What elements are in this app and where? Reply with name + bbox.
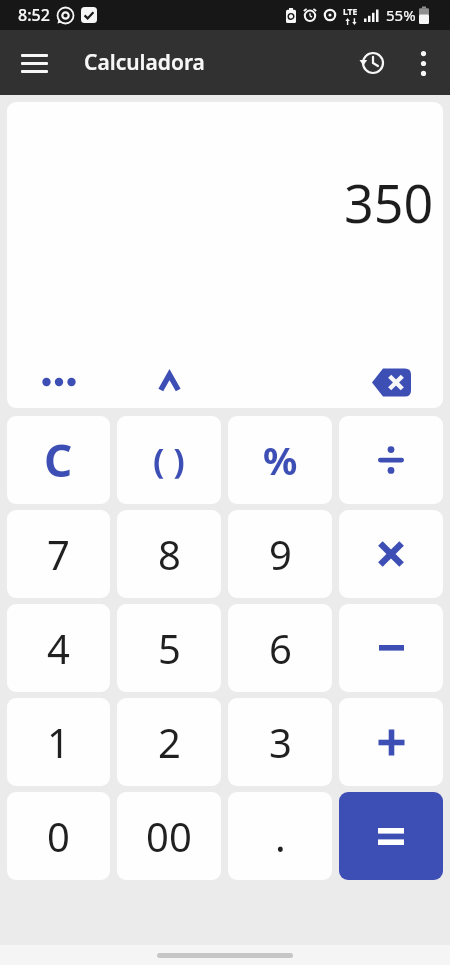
staticText: 1 xyxy=(47,715,70,769)
button[interactable]: 9 xyxy=(228,510,332,598)
staticText: 8 xyxy=(158,527,181,581)
button[interactable]: 3 xyxy=(228,698,332,786)
button[interactable]: 1 xyxy=(7,698,110,786)
button[interactable] xyxy=(339,792,443,880)
button[interactable] xyxy=(117,356,221,408)
staticText: 4 xyxy=(47,621,70,675)
button[interactable]: 8 xyxy=(117,510,221,598)
staticText: 00 xyxy=(146,809,192,863)
button[interactable]: ( ) xyxy=(117,416,221,504)
button[interactable]: 00 xyxy=(117,792,221,880)
staticText: LTE xyxy=(343,6,358,18)
staticText: 350 xyxy=(344,167,434,238)
button[interactable] xyxy=(406,46,440,80)
staticText: 3 xyxy=(269,715,292,769)
button[interactable] xyxy=(339,356,443,408)
staticText: 5 xyxy=(158,621,181,675)
button[interactable]: 7 xyxy=(7,510,110,598)
button[interactable]: 5 xyxy=(117,604,221,692)
button[interactable] xyxy=(13,42,55,84)
button[interactable] xyxy=(339,698,443,786)
button[interactable]: 6 xyxy=(228,604,332,692)
staticText: Calculadora xyxy=(84,48,205,77)
staticText: 8:52 xyxy=(18,4,50,26)
button[interactable]: 2 xyxy=(117,698,221,786)
staticText: C xyxy=(44,430,73,490)
staticText: 9 xyxy=(269,527,292,581)
button[interactable] xyxy=(339,604,443,692)
button[interactable]: 0 xyxy=(7,792,110,880)
button[interactable]: % xyxy=(228,416,332,504)
button[interactable] xyxy=(339,510,443,598)
staticText: 2 xyxy=(158,715,181,769)
button[interactable] xyxy=(352,43,392,83)
button[interactable]: . xyxy=(228,792,332,880)
button[interactable] xyxy=(7,356,110,408)
staticText: 55% xyxy=(386,5,416,25)
staticText: 7 xyxy=(47,527,70,581)
staticText: % xyxy=(263,434,298,486)
staticText: ( ) xyxy=(153,437,185,483)
staticText: 6 xyxy=(269,621,292,675)
button[interactable] xyxy=(339,416,443,504)
staticText: . xyxy=(275,809,286,863)
staticText: 0 xyxy=(47,809,70,863)
button[interactable]: 4 xyxy=(7,604,110,692)
button[interactable]: C xyxy=(7,416,110,504)
